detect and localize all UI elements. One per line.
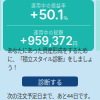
staticText: +50.1 bbox=[29, 9, 63, 21]
staticText: 円 bbox=[72, 40, 77, 46]
staticText: +959,372 bbox=[19, 36, 72, 46]
staticText: 次の注文予定日まで、あと44日です。 bbox=[7, 91, 93, 100]
staticText: 診断する bbox=[38, 77, 62, 86]
staticText: 運用中の総額 bbox=[33, 29, 63, 35]
staticText: あなたにあった資産形成をするために、「積立スタイル診断」をしましょう！ bbox=[7, 46, 92, 71]
button[interactable]: 診断する bbox=[22, 76, 78, 86]
staticText: 運用中の損益率 bbox=[31, 2, 66, 8]
staticText: % bbox=[63, 15, 67, 21]
